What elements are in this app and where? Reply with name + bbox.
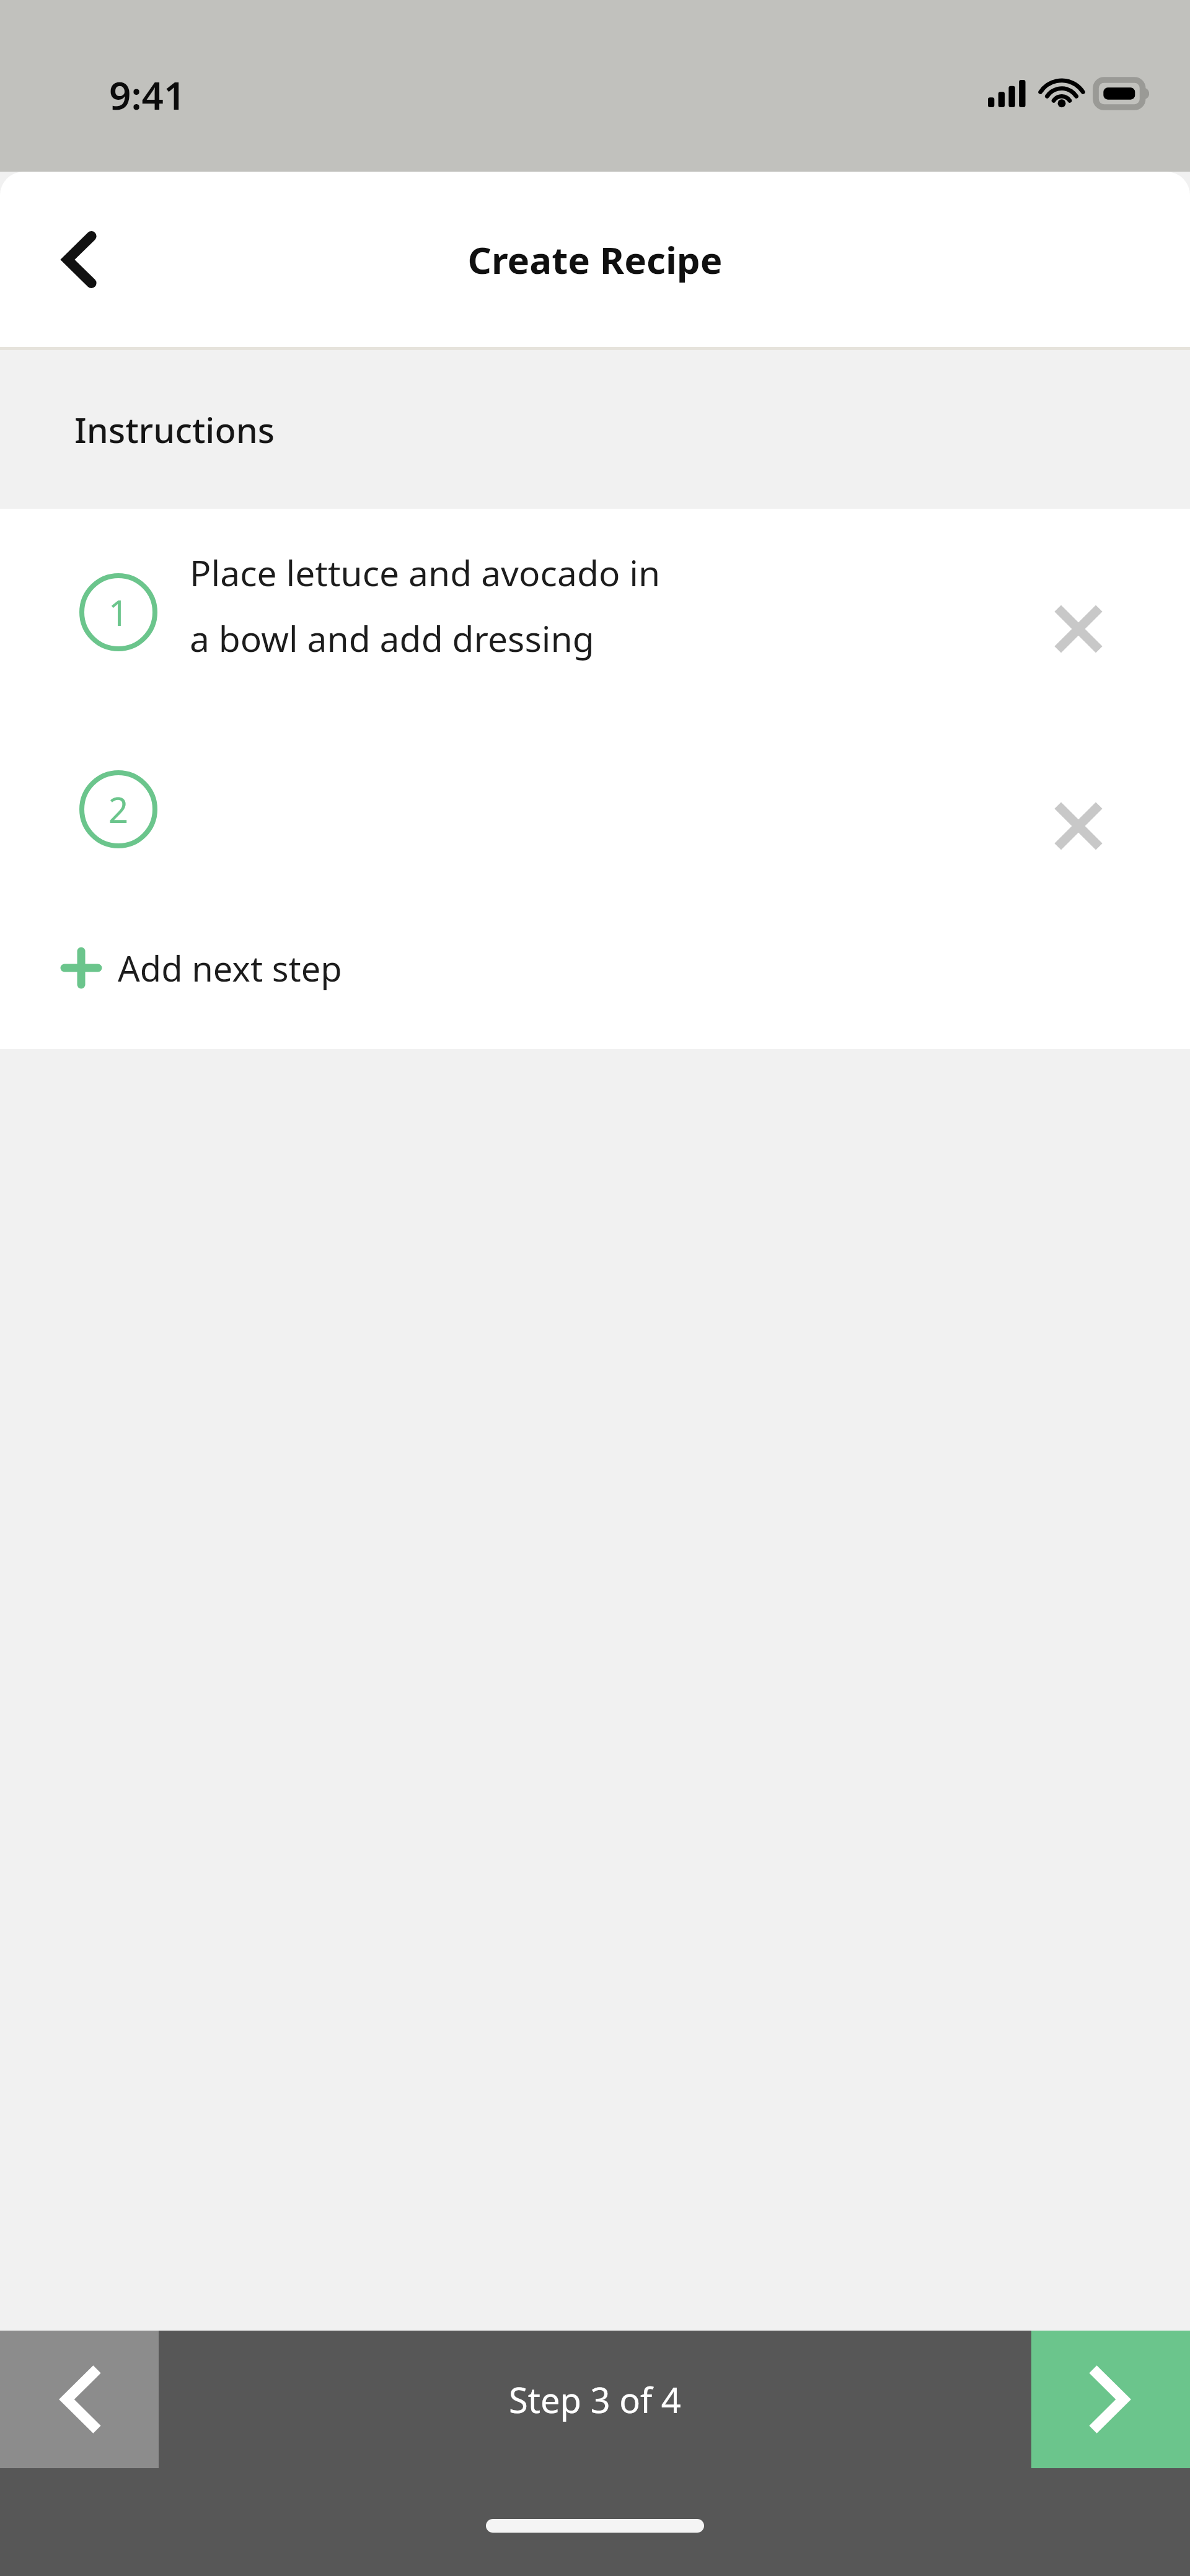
staticText: 1	[108, 589, 129, 636]
button[interactable]: Back	[38, 219, 119, 300]
staticText: Add next step	[118, 944, 342, 991]
staticText: 2	[108, 786, 129, 833]
button[interactable]: Previous step	[0, 2331, 159, 2468]
button[interactable]: Remove step	[1029, 776, 1128, 876]
staticText: Step 3 of 4	[509, 2376, 681, 2423]
staticText: Create Recipe	[467, 234, 723, 285]
button[interactable]: Add next step	[0, 928, 1190, 1008]
staticText: 9:41	[109, 69, 186, 121]
button[interactable]: Next step	[1031, 2331, 1190, 2468]
staticText: Place lettuce and avocado in a bowl and …	[190, 548, 995, 662]
staticText: Instructions	[74, 406, 275, 453]
button[interactable]: Remove step	[1029, 579, 1128, 679]
